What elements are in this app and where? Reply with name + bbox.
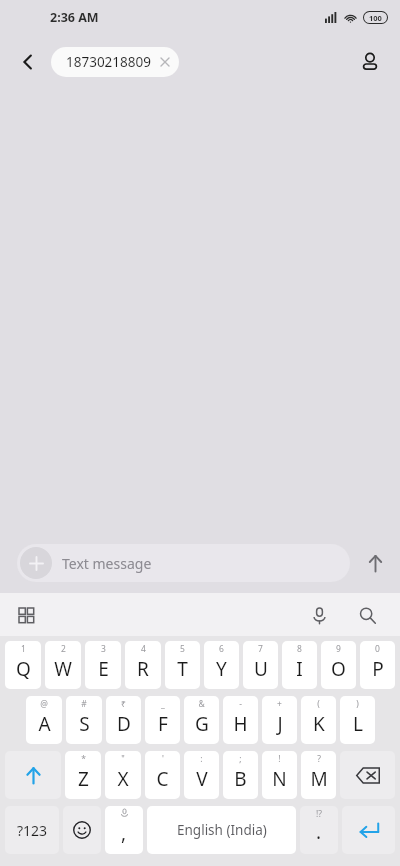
staticText: 8 (297, 643, 302, 655)
staticText: 7 (258, 643, 263, 655)
button[interactable]: 0 (360, 641, 395, 689)
button[interactable]: Text message (17, 544, 350, 582)
button[interactable]: Keyboard menu (8, 597, 44, 633)
staticText: . (316, 819, 322, 845)
staticText: A (38, 711, 51, 737)
staticText: N (272, 766, 287, 792)
button[interactable]: 18730218809 (51, 47, 179, 77)
button[interactable]: ) (340, 696, 375, 744)
staticText: 2 (61, 643, 66, 655)
staticText: - (239, 698, 242, 710)
staticText: ' (162, 753, 164, 765)
staticText: Y (216, 656, 227, 682)
button[interactable]: : (184, 751, 219, 799)
button[interactable]: Enter (342, 806, 395, 854)
staticText: _ (161, 698, 165, 710)
staticText: M (310, 766, 328, 792)
staticText: S (79, 711, 90, 737)
staticText: 3 (101, 643, 106, 655)
staticText: 2:36 AM (50, 9, 99, 26)
button[interactable]: Space (147, 806, 296, 854)
staticText: G (195, 711, 209, 737)
button[interactable]: 7 (243, 641, 278, 689)
button[interactable]: Emoji (63, 806, 101, 854)
button[interactable]: ? (301, 751, 336, 799)
staticText: X (117, 766, 129, 792)
staticText: @ (40, 698, 48, 710)
staticText: K (313, 711, 325, 737)
staticText: D (117, 711, 131, 737)
staticText: ) (356, 698, 359, 710)
staticText: F (158, 711, 168, 737)
button[interactable]: - (223, 696, 258, 744)
staticText: W (54, 656, 72, 682)
staticText: & (198, 698, 205, 710)
button[interactable]: Search (348, 596, 386, 634)
staticText: ( (317, 698, 320, 710)
button[interactable]: Voice input (300, 596, 338, 634)
staticText: I (296, 656, 303, 682)
button[interactable]: 5 (165, 641, 200, 689)
button[interactable]: 2 (45, 641, 81, 689)
staticText: # (81, 698, 87, 710)
staticText: 1 (21, 643, 26, 655)
button[interactable]: Send (350, 540, 400, 586)
button[interactable]: & (184, 696, 219, 744)
staticText: Q (16, 656, 31, 682)
button[interactable]: 3 (85, 641, 121, 689)
button[interactable]: Contact details (350, 42, 390, 82)
staticText: T (177, 656, 188, 682)
staticText: 6 (219, 643, 224, 655)
staticText: 9 (336, 643, 341, 655)
staticText: C (156, 766, 169, 792)
staticText: ; (239, 753, 242, 765)
staticText: H (233, 711, 248, 737)
button[interactable]: * (65, 751, 101, 799)
button[interactable]: 1 (5, 641, 41, 689)
staticText: Text message (62, 554, 152, 573)
staticText: : (200, 753, 203, 765)
staticText: 100 (369, 13, 382, 23)
staticText: R (137, 656, 149, 682)
button[interactable]: " (105, 751, 141, 799)
button[interactable]: 6 (204, 641, 239, 689)
button[interactable]: ; (223, 751, 258, 799)
staticText: V (196, 766, 208, 792)
button[interactable]: @ (26, 696, 62, 744)
button[interactable]: Back (8, 42, 48, 82)
button[interactable]: 8 (282, 641, 317, 689)
staticText: L (353, 711, 363, 737)
staticText: English (India) (177, 821, 267, 839)
button[interactable]: # (66, 696, 102, 744)
staticText: , (121, 820, 127, 846)
staticText: 4 (141, 643, 146, 655)
button[interactable]: Delete (340, 751, 395, 799)
button[interactable]: ' (145, 751, 180, 799)
staticText: O (331, 656, 346, 682)
staticText: P (372, 656, 384, 682)
staticText: + (277, 698, 282, 710)
staticText: E (98, 656, 109, 682)
staticText: ?123 (17, 821, 48, 840)
staticText: ₹ (121, 698, 126, 710)
button[interactable]: Shift (5, 751, 61, 799)
staticText: " (121, 753, 125, 765)
staticText: * (81, 753, 86, 765)
button[interactable]: , (105, 806, 143, 854)
button[interactable]: _ (145, 696, 180, 744)
staticText: ? (317, 753, 321, 765)
button[interactable]: ( (301, 696, 336, 744)
staticText: !? (316, 808, 322, 820)
button[interactable]: ?123 (5, 806, 59, 854)
button[interactable]: 9 (321, 641, 356, 689)
button[interactable]: 4 (125, 641, 161, 689)
staticText: 5 (180, 643, 185, 655)
staticText: 18730218809 (66, 53, 151, 71)
staticText: U (254, 656, 268, 682)
staticText: B (234, 766, 247, 792)
staticText: ! (278, 753, 281, 765)
button[interactable]: + (262, 696, 297, 744)
button[interactable]: ! (262, 751, 297, 799)
button[interactable]: ₹ (106, 696, 141, 744)
button[interactable]: !? (300, 806, 338, 854)
